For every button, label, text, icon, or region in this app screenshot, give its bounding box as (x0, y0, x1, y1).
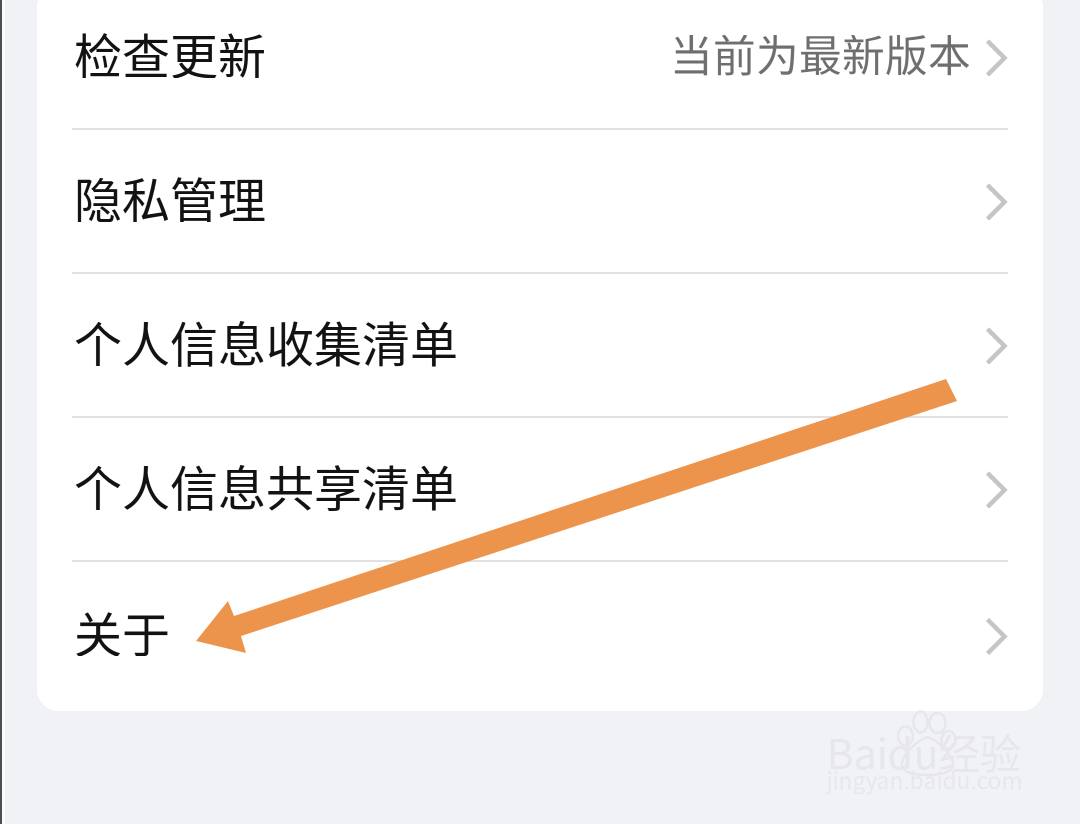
button[interactable]: 隐私管理 (37, 130, 1043, 274)
staticText: 个人信息共享清单 (74, 450, 458, 520)
staticText: 个人信息收集清单 (74, 306, 458, 376)
staticText: 检查更新 (74, 18, 266, 88)
button[interactable]: 关于 (37, 562, 1043, 711)
button[interactable]: 个人信息收集清单 (37, 274, 1043, 418)
button[interactable]: 检查更新 (37, 0, 1043, 130)
staticText: Baidu经验 (826, 721, 1020, 781)
staticText: 隐私管理 (74, 162, 266, 232)
button[interactable]: 个人信息共享清单 (37, 418, 1043, 562)
staticText: 当前为最新版本 (670, 22, 971, 84)
staticText: 关于 (74, 597, 170, 666)
staticText: jingyan.baidu.com (826, 763, 1022, 796)
